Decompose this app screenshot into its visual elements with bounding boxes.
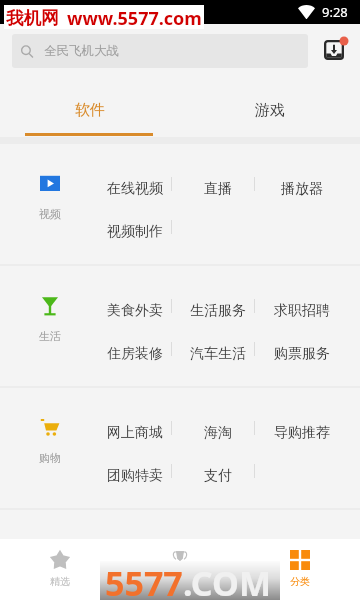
staticText: 直播 <box>204 180 232 198</box>
staticText: 海淘 <box>204 424 232 442</box>
button[interactable]: 生活 <box>26 266 74 386</box>
button[interactable]: 视频 <box>26 144 74 264</box>
staticText: 求职招聘 <box>274 302 330 320</box>
staticText: 生活服务 <box>190 302 246 320</box>
button[interactable]: 精选 <box>0 539 120 600</box>
staticText: 在线视频 <box>107 180 163 198</box>
staticText: 购票服务 <box>274 345 330 363</box>
button[interactable]: 分类 <box>240 539 360 600</box>
staticText: 团购特卖 <box>107 467 163 485</box>
button[interactable]: 导购推荐 <box>266 417 338 449</box>
button[interactable]: 支付 <box>182 460 254 492</box>
button[interactable]: 游戏 <box>180 80 360 137</box>
staticText: 游戏 <box>255 101 285 120</box>
staticText: www.5577.com <box>67 6 202 30</box>
staticText: 美食外卖 <box>107 302 163 320</box>
button[interactable]: 播放器 <box>266 173 338 205</box>
staticText: 精选 <box>50 575 70 588</box>
button[interactable]: 网上商城 <box>99 417 171 449</box>
button[interactable]: Downloads <box>322 36 348 62</box>
staticText: 网上商城 <box>107 424 163 442</box>
staticText: 分类 <box>290 575 310 588</box>
staticText: 5577 <box>105 560 183 599</box>
button[interactable]: 直播 <box>182 173 254 205</box>
staticText: 汽车生活 <box>190 345 246 363</box>
staticText: 导购推荐 <box>274 424 330 442</box>
button[interactable]: 团购特卖 <box>99 460 171 492</box>
button[interactable]: 汽车生活 <box>182 338 254 370</box>
button[interactable]: 排行 <box>120 539 240 600</box>
button[interactable]: 住房装修 <box>99 338 171 370</box>
staticText: .COM <box>183 560 271 599</box>
button[interactable]: 海淘 <box>182 417 254 449</box>
button[interactable]: 软件 <box>0 80 180 137</box>
button[interactable]: 购物 <box>26 388 74 508</box>
button[interactable]: 美食外卖 <box>99 295 171 327</box>
button[interactable]: 求职招聘 <box>266 295 338 327</box>
staticText: 播放器 <box>281 180 323 198</box>
button[interactable]: 生活服务 <box>182 295 254 327</box>
button[interactable]: 视频制作 <box>99 216 171 248</box>
staticText: 全民飞机大战 <box>44 43 119 59</box>
staticText: 生活 <box>39 329 61 343</box>
staticText: 9:28 <box>322 3 348 21</box>
staticText: 排行 <box>170 575 190 588</box>
staticText: 住房装修 <box>107 345 163 363</box>
staticText: 视频制作 <box>107 223 163 241</box>
button[interactable]: 全民飞机大战 <box>12 34 308 68</box>
button[interactable]: 购票服务 <box>266 338 338 370</box>
staticText: 软件 <box>75 101 105 120</box>
staticText: 视频 <box>39 207 61 221</box>
staticText: 支付 <box>204 467 232 485</box>
staticText: 我机网 <box>6 7 59 29</box>
staticText: 购物 <box>39 451 61 465</box>
button[interactable]: 在线视频 <box>99 173 171 205</box>
